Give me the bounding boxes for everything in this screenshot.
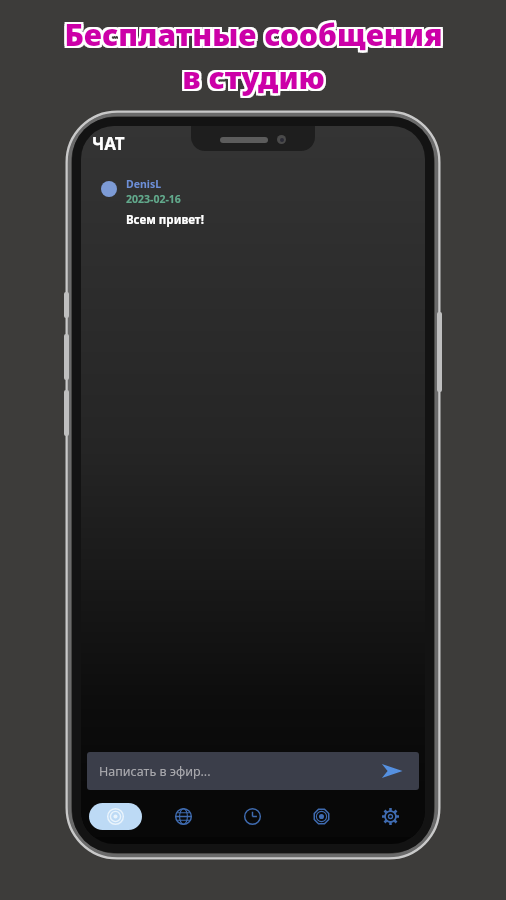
staticText: Бесплатные сообщения — [62, 14, 441, 55]
staticText: Бесплатные сообщения — [62, 12, 441, 53]
staticText: Всем привет! — [126, 212, 204, 228]
staticText: Написать в эфир... — [99, 763, 379, 780]
staticText: Бесплатные сообщения — [64, 16, 443, 57]
staticText: Бесплатные сообщения — [64, 12, 443, 53]
staticText: в студию — [184, 59, 327, 100]
staticText: ЧАТ — [92, 132, 125, 155]
staticText: Бесплатные сообщения — [66, 12, 445, 53]
button[interactable]: Broadcast — [81, 795, 149, 837]
staticText: в студию — [182, 59, 325, 100]
staticText: в студию — [182, 57, 325, 98]
button[interactable]: World chat — [149, 795, 218, 837]
staticText: в студию — [182, 55, 325, 96]
button[interactable]: Rooms — [287, 795, 356, 837]
staticText: DenisL — [126, 177, 162, 191]
button[interactable]: DenisL — [81, 175, 425, 230]
staticText: 2023-02-16 — [126, 192, 181, 206]
staticText: Бесплатные сообщения — [64, 14, 443, 55]
button[interactable]: Settings — [356, 795, 425, 837]
staticText: Бесплатные сообщения — [62, 16, 441, 57]
staticText: Бесплатные сообщения — [66, 14, 445, 55]
staticText: в студию — [180, 59, 323, 100]
staticText: в студию — [184, 55, 327, 96]
staticText: в студию — [184, 57, 327, 98]
button[interactable]: Send message — [379, 758, 405, 784]
staticText: в студию — [180, 55, 323, 96]
button[interactable]: Написать в эфир... — [87, 752, 419, 790]
button[interactable]: History — [218, 795, 287, 837]
staticText: Бесплатные сообщения — [66, 16, 445, 57]
staticText: в студию — [180, 57, 323, 98]
